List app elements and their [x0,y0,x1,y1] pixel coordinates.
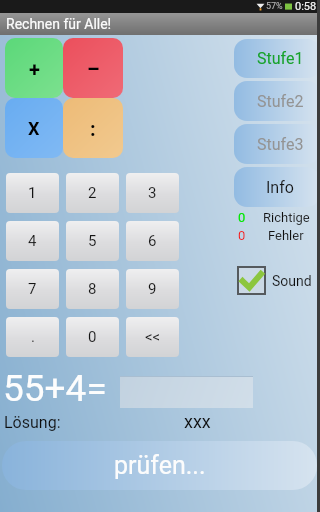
staticText: Rechnen für Alle! [6,16,112,32]
button[interactable]: 4 [6,221,59,261]
button[interactable]: 5 [66,221,119,261]
staticText: Sound [272,273,312,289]
staticText: – [87,57,100,80]
button[interactable]: – [63,38,123,98]
staticText: 2 [88,184,97,202]
staticText: 57% [266,1,283,12]
staticText: << [145,328,161,346]
staticText: Stufe3 [257,135,304,154]
button[interactable]: Info [234,167,320,207]
button[interactable]: 8 [66,269,119,309]
button[interactable]: . [6,317,59,357]
staticText: Info [266,178,294,197]
staticText: 3 [148,184,157,202]
button[interactable]: : [63,98,123,158]
staticText: 0 [88,328,97,346]
button[interactable]: 3 [126,173,179,213]
staticText: Lösung: [4,413,61,432]
staticText: xxx [184,411,211,432]
staticText: 8 [88,280,97,298]
button[interactable]: 0 [66,317,119,357]
button[interactable]: 9 [126,269,179,309]
staticText: Richtige [263,210,310,225]
button[interactable]: 1 [6,173,59,213]
staticText: prüfen... [114,451,206,480]
staticText: 0 [238,228,246,243]
staticText: 6 [148,232,157,250]
staticText: 0 [238,210,246,225]
staticText: . [31,328,35,346]
staticText: : [90,117,96,140]
button[interactable]: X [5,98,63,158]
button[interactable]: 6 [126,221,179,261]
button[interactable]: 7 [6,269,59,309]
button[interactable]: 2 [66,173,119,213]
staticText: 5 [88,232,97,250]
button[interactable]: << [126,317,179,357]
staticText: Fehler [268,228,304,243]
button[interactable]: + [5,38,63,98]
staticText: 0:58 [295,0,317,13]
staticText: 55+4= [3,367,107,410]
button[interactable]: Antwort [120,376,253,408]
button[interactable]: Stufe2 [234,81,320,121]
staticText: Stufe2 [257,92,304,111]
staticText: 9 [148,280,157,298]
button[interactable]: prüfen... [2,441,317,490]
staticText: X [28,118,40,139]
button[interactable]: Stufe1 [234,39,320,78]
staticText: 1 [28,184,37,202]
button[interactable]: Sound [238,267,312,294]
staticText: + [29,57,40,80]
staticText: 7 [28,280,37,298]
button[interactable]: Stufe3 [234,124,320,164]
staticText: Stufe1 [257,49,304,68]
staticText: 4 [28,232,37,250]
